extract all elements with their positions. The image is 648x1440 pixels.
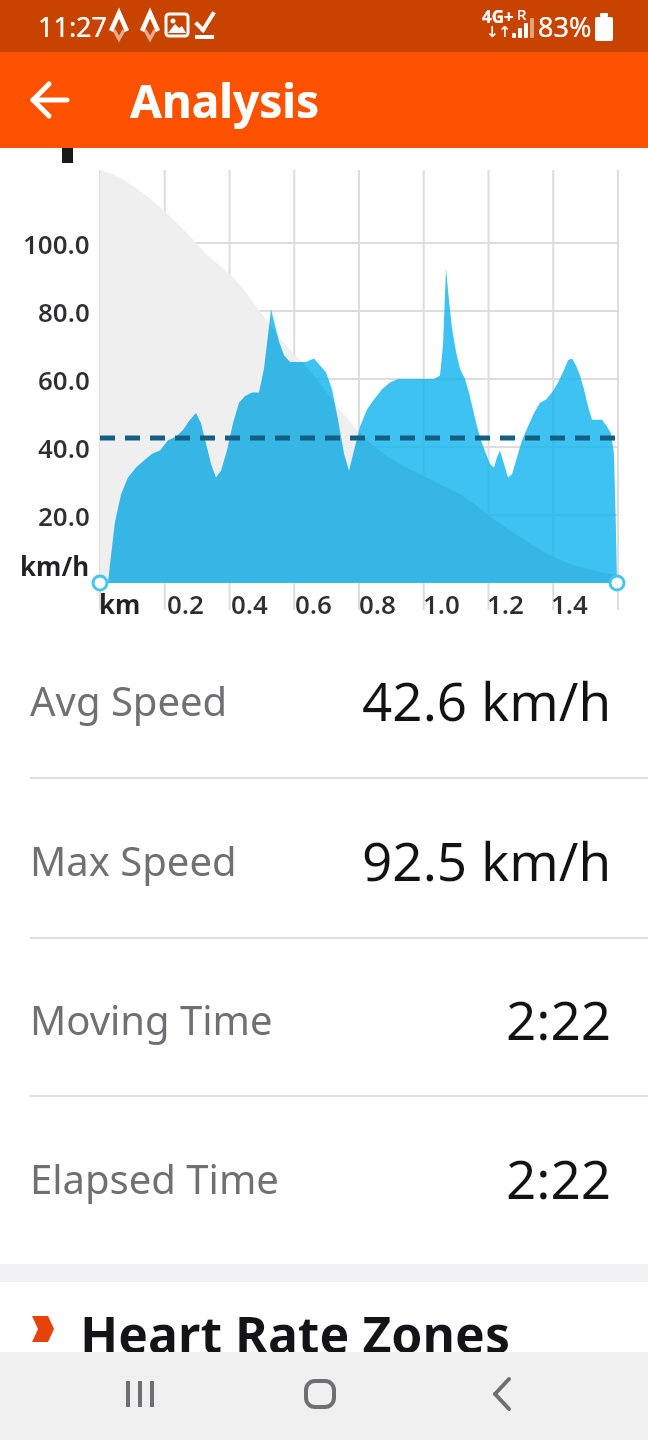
button[interactable]: Moving Time (0, 941, 648, 1097)
button[interactable] (104, 1358, 176, 1430)
staticText: R (517, 4, 527, 24)
staticText: 40.0 (38, 430, 90, 464)
staticText: 1.2 (487, 586, 524, 618)
staticText: 100.0 (23, 226, 90, 260)
button[interactable]: Avg Speed (0, 622, 648, 778)
button[interactable] (466, 1358, 538, 1430)
staticText: 83% (538, 8, 592, 45)
staticText: Heart Rate Zones (80, 1300, 511, 1368)
staticText: 20.0 (38, 498, 90, 532)
staticText: Moving Time (30, 992, 273, 1046)
staticText: 2:22 (506, 983, 612, 1055)
staticText: 80.0 (38, 294, 90, 328)
staticText: Avg Speed (30, 673, 228, 727)
staticText: Max Speed (30, 833, 237, 887)
staticText: 92.5 km/h (362, 824, 612, 896)
staticText: 0.4 (231, 586, 268, 618)
staticText: km/h (20, 548, 90, 582)
button[interactable]: Max Speed (0, 782, 648, 938)
staticText: Elapsed Time (30, 1151, 279, 1205)
staticText: 0.2 (167, 586, 204, 618)
staticText: ↓↑ (486, 23, 512, 40)
staticText: 4G+ (482, 5, 514, 28)
staticText: Analysis (130, 69, 320, 132)
button[interactable]: Elapsed Time (0, 1100, 648, 1256)
staticText: 1.4 (551, 586, 588, 618)
staticText: 0.6 (295, 586, 332, 618)
button[interactable]: Heart Rate Zones (0, 1282, 648, 1356)
staticText: km (99, 586, 141, 618)
button[interactable] (284, 1358, 356, 1430)
staticText: 42.6 km/h (362, 664, 612, 736)
staticText: 1.0 (423, 586, 460, 618)
staticText: 2:22 (506, 1142, 612, 1214)
staticText: 0.8 (359, 586, 396, 618)
staticText: 60.0 (38, 362, 90, 396)
button[interactable] (16, 66, 84, 134)
staticText: 11:27 (38, 8, 108, 45)
